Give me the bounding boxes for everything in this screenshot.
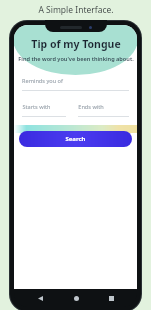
button[interactable]: Reminds you of (22, 77, 63, 85)
button[interactable]: Recent apps (105, 292, 117, 304)
staticText: Find the word you've been thinking about… (18, 55, 134, 63)
button[interactable]: Home (70, 292, 82, 304)
staticText: A Simple Interface. (38, 4, 114, 16)
button[interactable]: Back (34, 292, 46, 304)
staticText: Search (65, 135, 86, 143)
button[interactable]: Search (19, 131, 132, 147)
staticText: Tip of my Tongue (31, 37, 121, 51)
button[interactable]: Ends with (78, 103, 104, 111)
button[interactable]: Starts with (22, 103, 51, 111)
